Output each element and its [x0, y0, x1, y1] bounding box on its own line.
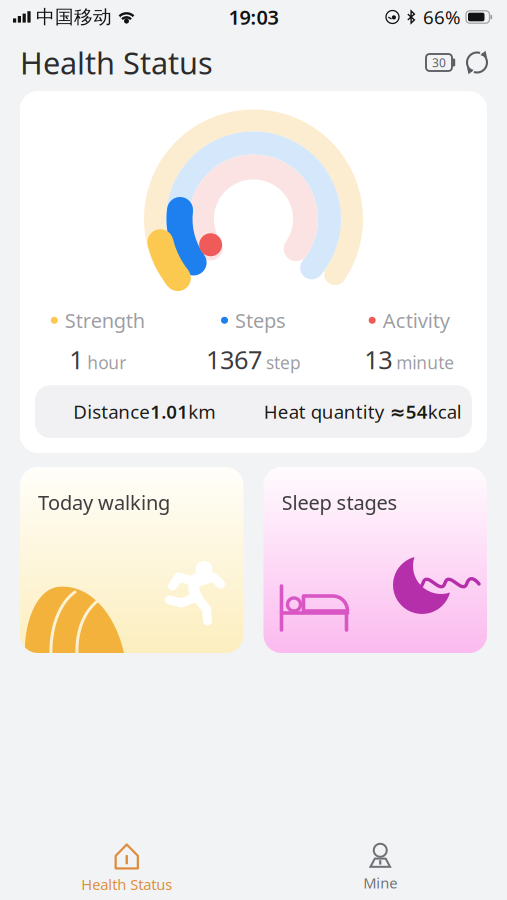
button[interactable]: Refresh: [459, 45, 495, 79]
staticText: 1: [69, 343, 83, 376]
staticText: 19:03: [228, 4, 278, 30]
staticText: Steps: [235, 307, 286, 334]
staticText: Distance1.01km: [73, 399, 215, 424]
staticText: 30: [432, 54, 446, 70]
staticText: Activity: [383, 307, 450, 334]
staticText: Mine: [363, 873, 397, 892]
staticText: hour: [87, 351, 126, 374]
staticText: 13: [364, 343, 392, 376]
button[interactable]: Today walking: [20, 467, 243, 653]
button[interactable]: Mine: [253, 825, 507, 898]
staticText: Heat quantity ≈54kcal: [264, 399, 462, 424]
button[interactable]: Health Status: [0, 823, 253, 900]
staticText: minute: [396, 351, 454, 374]
button[interactable]: Battery status: [423, 45, 459, 79]
staticText: Strength: [65, 307, 145, 334]
staticText: step: [266, 351, 301, 374]
staticText: 中国移动: [36, 5, 112, 28]
staticText: 1367: [206, 343, 262, 376]
staticText: 66%: [423, 5, 461, 29]
staticText: Sleep stages: [281, 489, 397, 516]
staticText: Health Status: [81, 874, 172, 894]
staticText: Health Status: [20, 42, 213, 83]
button[interactable]: Sleep stages: [263, 467, 487, 653]
staticText: Today walking: [38, 489, 170, 516]
